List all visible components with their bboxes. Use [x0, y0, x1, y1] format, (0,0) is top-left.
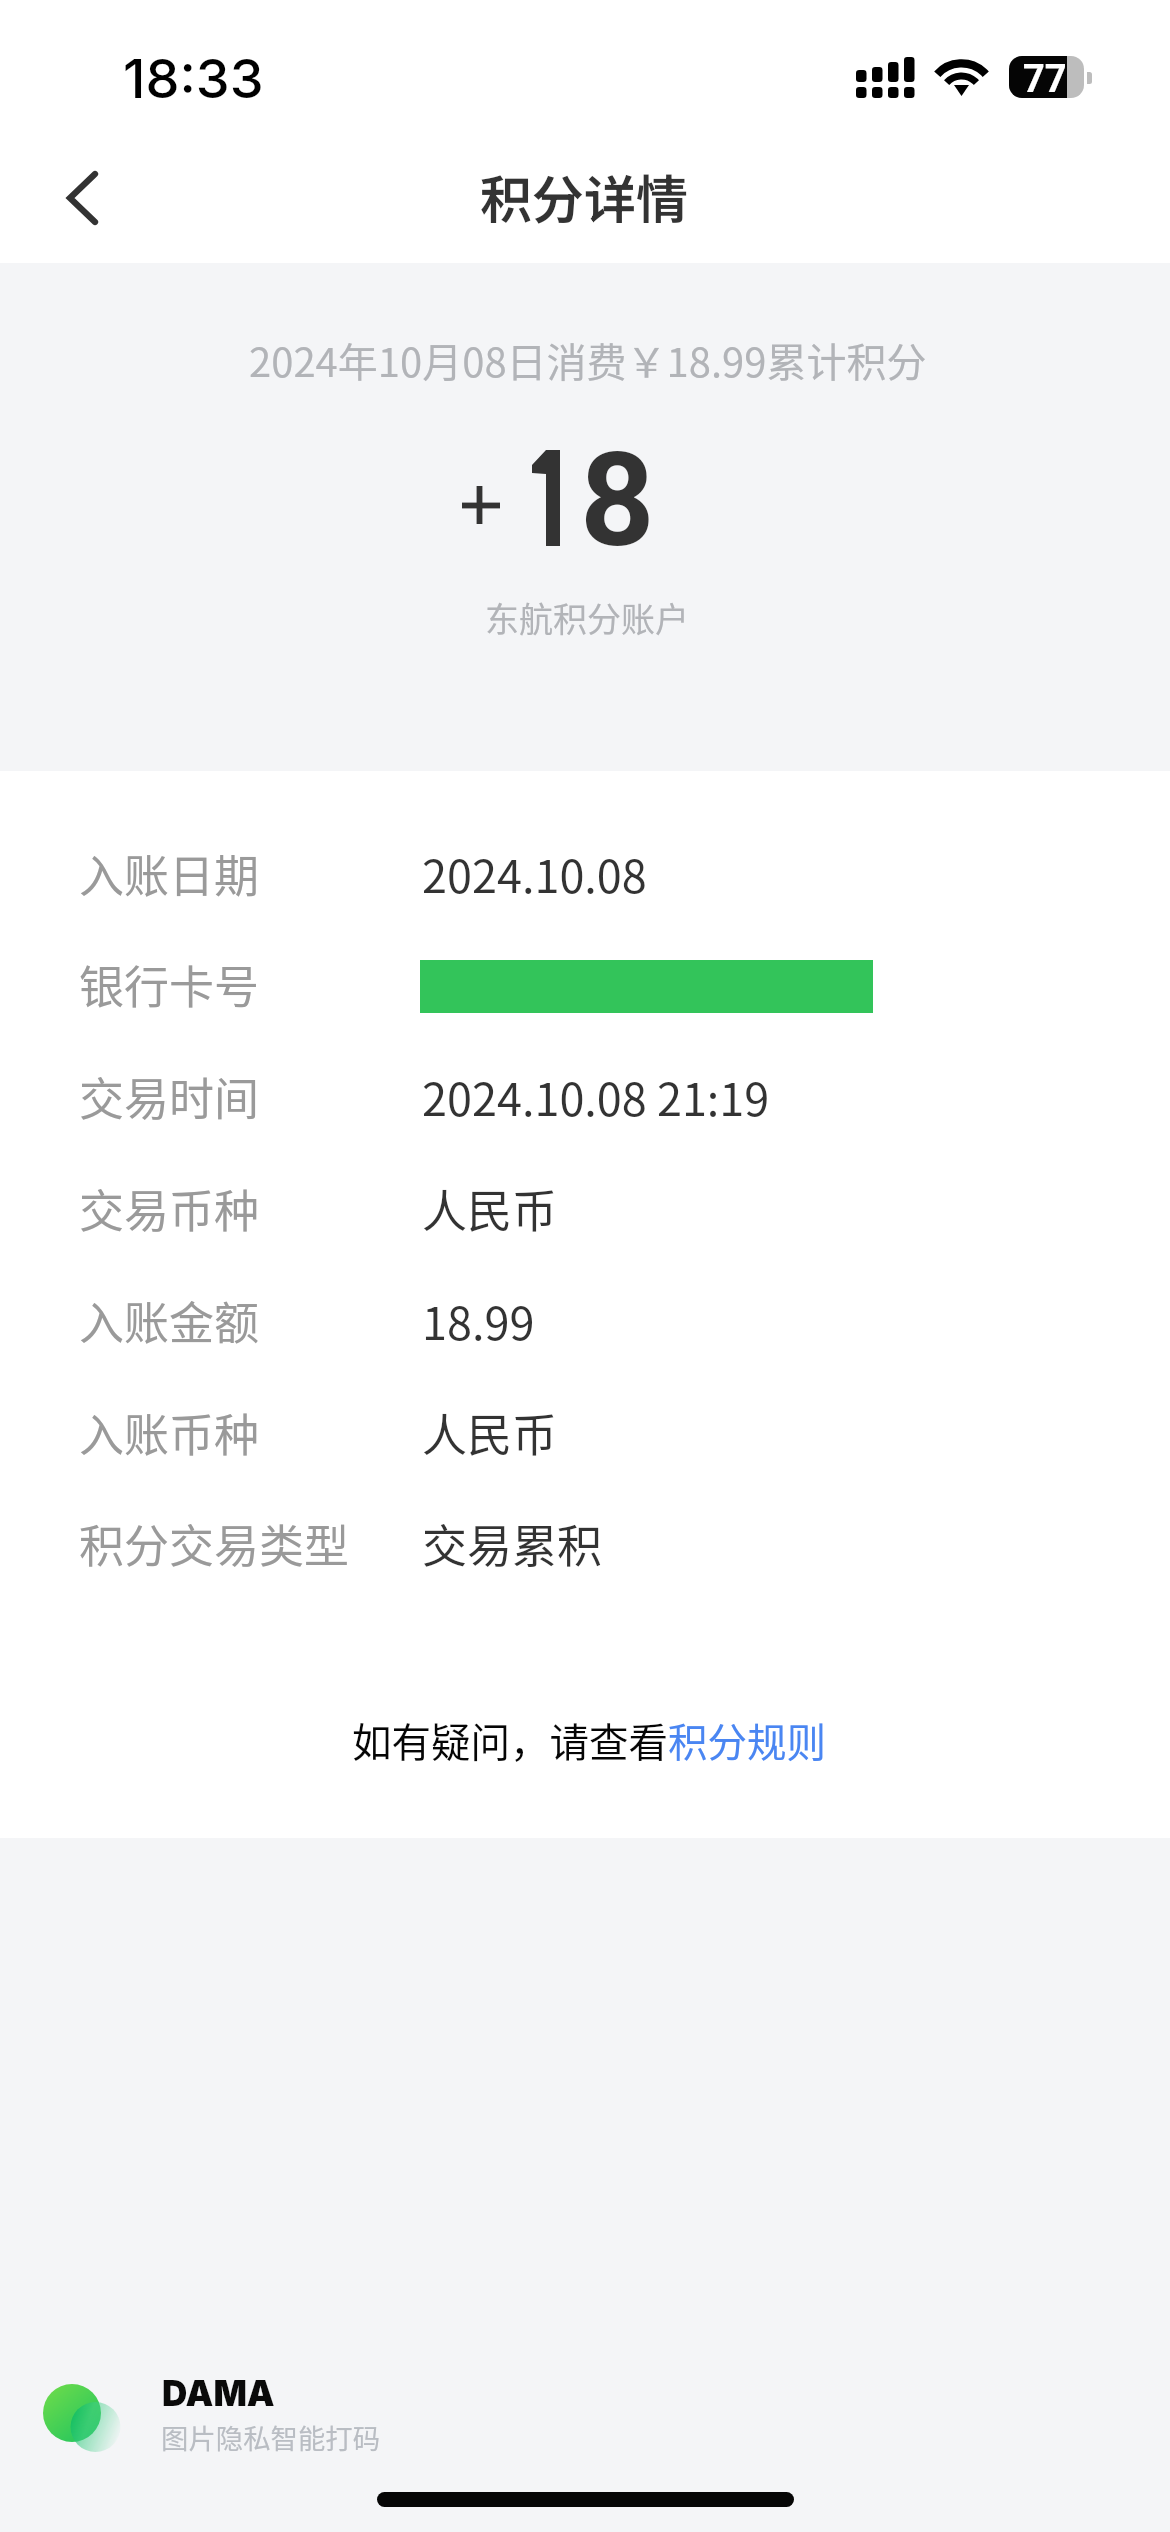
button[interactable]: 积分交易类型	[0, 1498, 1170, 1588]
staticText: 东航积分账户	[485, 593, 689, 642]
button[interactable]: Back	[33, 147, 138, 252]
staticText: 入账币种	[79, 1400, 260, 1465]
button[interactable]: 交易时间	[0, 1051, 1170, 1141]
staticText: 8	[580, 424, 655, 576]
staticText: 交易累积	[422, 1511, 603, 1576]
staticText: 入账金额	[79, 1288, 260, 1353]
button[interactable]: 入账金额	[0, 1275, 1170, 1365]
button[interactable]: 入账日期	[0, 828, 1170, 918]
staticText: 积分详情	[480, 159, 689, 234]
staticText: 人民币	[422, 1176, 558, 1241]
staticText: 图片隐私智能打码	[161, 2417, 381, 2457]
button[interactable]: 入账币种	[0, 1387, 1170, 1477]
staticText: 积分交易类型	[79, 1511, 350, 1576]
staticText: 银行卡号	[79, 952, 260, 1017]
staticText: 如有疑问，请查看积分规则	[352, 1711, 826, 1768]
button[interactable]: 交易币种	[0, 1163, 1170, 1253]
staticText: 交易币种	[79, 1176, 260, 1241]
staticText: 2024年10月08日消费￥18.99累计积分	[249, 331, 927, 389]
staticText: 77	[1023, 57, 1067, 98]
staticText: 入账日期	[79, 841, 260, 906]
staticText: 人民币	[422, 1400, 558, 1465]
staticText: 2024.10.08 21:19	[422, 1064, 770, 1129]
staticText: 18:33	[123, 46, 264, 111]
staticText: 2024.10.08	[422, 841, 647, 906]
button[interactable]: 如有疑问，请查看积分规则	[352, 1711, 826, 1768]
staticText: 交易时间	[79, 1064, 260, 1129]
button[interactable]: 银行卡号	[0, 939, 1170, 1029]
staticText: 18.99	[422, 1288, 535, 1353]
staticText: DAMA	[162, 2372, 275, 2414]
